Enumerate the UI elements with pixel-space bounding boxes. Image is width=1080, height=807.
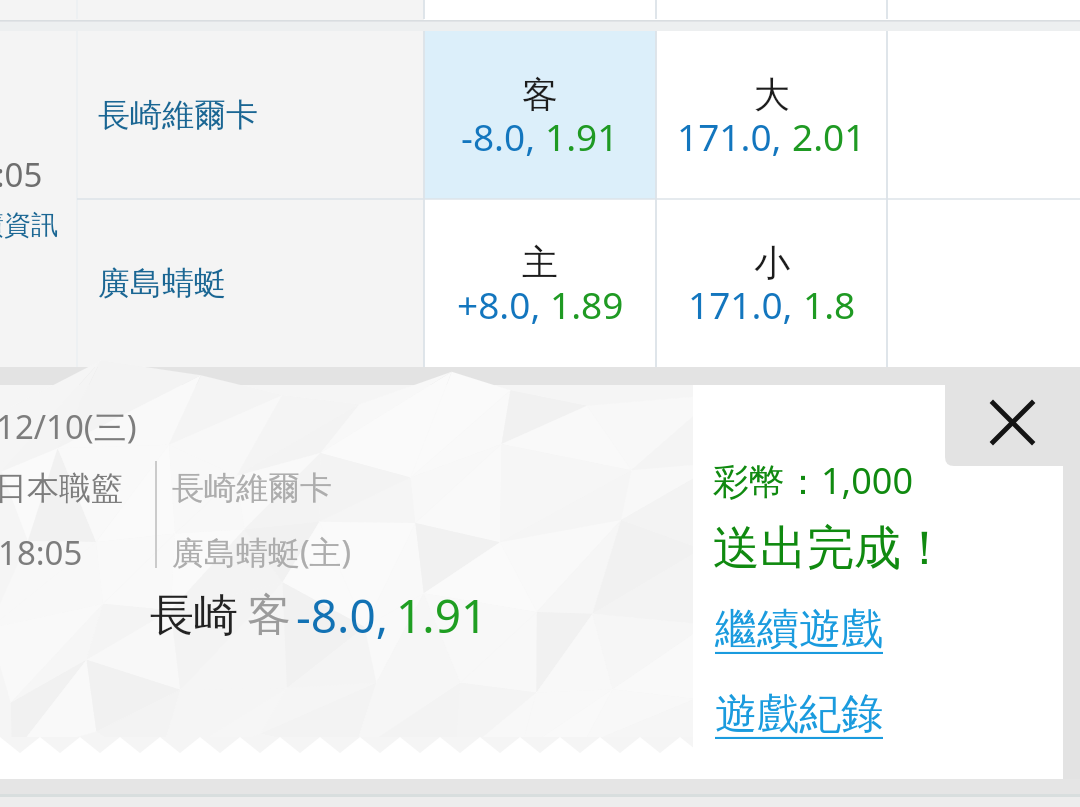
staticText: 主 — [522, 240, 558, 285]
staticText: 171.0, — [688, 279, 803, 329]
staticText: 廣島蜻蜓 — [98, 263, 226, 303]
button[interactable]: 長崎維爾卡 — [77, 31, 424, 199]
button[interactable]: 客 — [424, 31, 656, 199]
staticText: -8.0, — [296, 584, 389, 647]
staticText: 日本職籃 — [0, 468, 123, 508]
button[interactable]: 廣島蜻蜓 — [77, 199, 424, 367]
staticText: 1.91 — [545, 111, 619, 161]
staticText: 長崎維爾卡 — [172, 468, 332, 508]
staticText: 171.0, — [677, 111, 792, 161]
staticText: 18:05 — [0, 530, 83, 575]
staticText: 1.8 — [803, 279, 856, 329]
staticText: 客 — [522, 72, 558, 117]
staticText: 長崎 — [150, 588, 238, 643]
button[interactable]: Close — [945, 367, 1080, 466]
staticText: -8.0, — [461, 111, 545, 161]
staticText: 1.89 — [550, 279, 624, 329]
staticText: 繼續遊戲 — [715, 603, 883, 656]
staticText: 戰績資訊 — [0, 208, 58, 242]
staticText: 長崎維爾卡 — [98, 95, 258, 135]
staticText: 大 — [754, 72, 790, 117]
button[interactable]: 大 — [656, 31, 887, 199]
staticText: 18:05 — [0, 152, 43, 197]
button[interactable]: 戰績資訊 — [0, 208, 58, 242]
staticText: 1.91 — [396, 584, 488, 647]
button[interactable]: 繼續遊戲 — [715, 603, 883, 656]
staticText: 小 — [754, 240, 790, 285]
staticText: 廣島蜻蜓(主) — [172, 530, 352, 574]
staticText: 2.01 — [792, 111, 866, 161]
staticText: +8.0, — [457, 279, 550, 329]
button[interactable]: 遊戲紀錄 — [715, 688, 883, 741]
button[interactable]: 小 — [656, 199, 887, 367]
staticText: 送出完成！ — [713, 519, 948, 578]
button[interactable]: 主 — [424, 199, 656, 367]
staticText: 遊戲紀錄 — [715, 688, 883, 741]
staticText: 12/10(三) — [0, 404, 137, 449]
staticText: 彩幣：1,000 — [713, 456, 914, 505]
staticText: 客 — [247, 588, 291, 643]
